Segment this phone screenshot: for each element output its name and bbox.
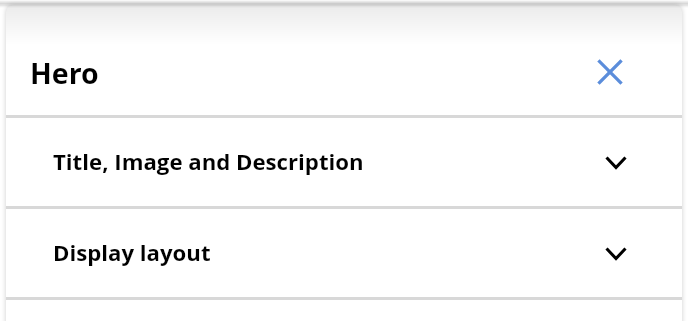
button[interactable]: Close <box>586 48 634 96</box>
other: Expand Display layout <box>592 229 640 277</box>
staticText: Display layout <box>53 237 211 267</box>
button[interactable]: Display layout <box>6 209 682 297</box>
staticText: Title, Image and Description <box>53 146 364 176</box>
button[interactable]: Title, Image and Description <box>6 118 682 206</box>
staticText: Hero <box>30 54 99 93</box>
other: Expand Title, Image and Description <box>592 138 640 186</box>
